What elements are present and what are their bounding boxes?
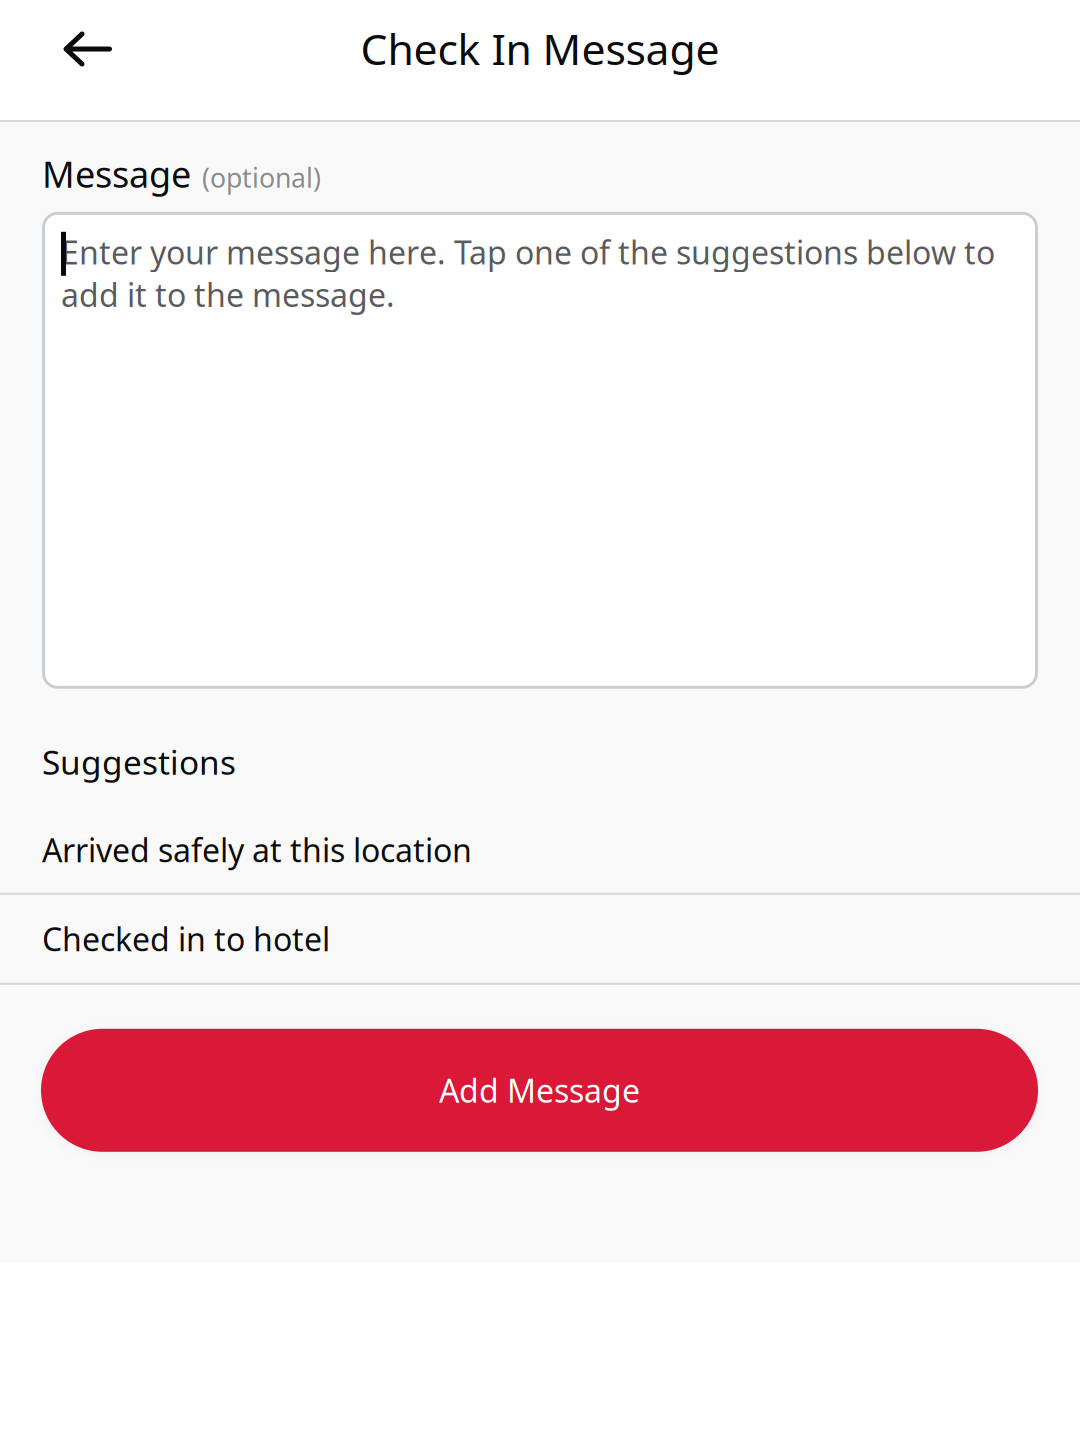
button[interactable]: Arrived safely at this location [0,787,1080,895]
button[interactable]: Message text field [42,212,1038,689]
staticText: Check In Message [360,20,719,77]
button[interactable]: Add Message [41,1029,1038,1152]
button[interactable]: Back [0,0,172,98]
staticText: (optional) [202,160,321,195]
staticText: Add Message [439,1069,640,1112]
staticText: Checked in to hotel [42,918,330,960]
button[interactable]: Checked in to hotel [0,895,1080,985]
staticText: Enter your message here. Tap one of the … [61,231,995,316]
staticText: Message [42,150,191,198]
staticText: Arrived safely at this location [42,829,472,871]
staticText: Suggestions [42,740,236,784]
